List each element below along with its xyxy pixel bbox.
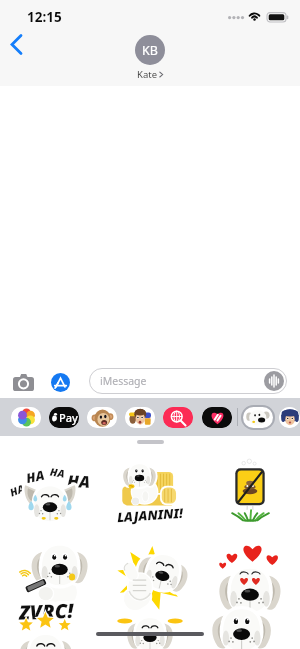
button[interactable]: Digital Touch xyxy=(202,407,232,428)
button[interactable]: Sticker 8 xyxy=(100,625,200,649)
button[interactable]: Sticker 6 xyxy=(200,537,300,625)
staticText: iMessage xyxy=(100,374,147,388)
button[interactable]: Animoji xyxy=(87,407,117,428)
button[interactable]: KB xyxy=(135,35,165,81)
button[interactable]: Sticker 9 xyxy=(200,625,300,649)
button[interactable]: Record audio message xyxy=(264,371,284,391)
staticText: Pay xyxy=(59,410,78,425)
staticText: 12:15 xyxy=(27,8,62,26)
button[interactable]: App Store xyxy=(50,372,70,392)
button[interactable]: iMessage xyxy=(89,368,287,394)
staticText: KB xyxy=(142,42,158,59)
button[interactable]: Back xyxy=(2,29,32,59)
staticText: Kate xyxy=(137,68,157,81)
button[interactable]: Memoji xyxy=(125,407,155,428)
button[interactable]: Dog stickers xyxy=(243,407,273,428)
button[interactable]: Memoji stickers xyxy=(279,407,300,428)
button[interactable]: Photos xyxy=(11,407,41,428)
button[interactable]: GIF search xyxy=(163,407,193,428)
button[interactable]: Camera xyxy=(11,371,35,393)
button[interactable]: Sticker 4 xyxy=(0,537,100,625)
button[interactable]: Sticker 7 xyxy=(0,625,100,649)
button[interactable]: Sticker 1 xyxy=(0,449,100,537)
button[interactable]: Sticker 3 xyxy=(200,449,300,537)
button[interactable]: Sticker 2 xyxy=(100,449,200,537)
button[interactable]: Apple Pay xyxy=(49,407,79,428)
button[interactable]: Sticker 5 xyxy=(100,537,200,625)
